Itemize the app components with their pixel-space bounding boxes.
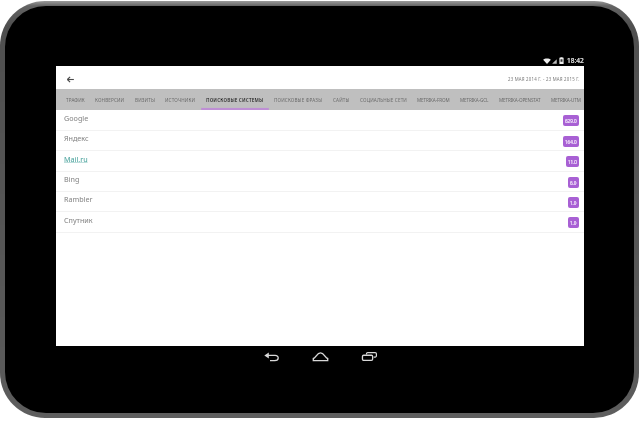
staticText: 18:42 bbox=[567, 56, 584, 65]
staticText: Bing bbox=[64, 174, 80, 184]
button[interactable]: METRIKA-GCL bbox=[455, 89, 494, 110]
button[interactable]: Back bbox=[247, 346, 296, 366]
staticText: 1.0 bbox=[570, 200, 577, 206]
staticText: ИСТОЧНИКИ bbox=[165, 97, 196, 103]
button[interactable]: Google bbox=[56, 110, 584, 131]
button[interactable]: ТРАФИК bbox=[61, 89, 90, 110]
staticText: ВИЗИТЫ bbox=[135, 97, 155, 103]
button[interactable]: ПОИСКОВЫЕ СИСТЕМЫ bbox=[201, 89, 269, 110]
button[interactable]: Яндекс bbox=[56, 131, 584, 151]
staticText: 23 МАЯ 2014 Г. - 23 МАЯ 2015 Г. bbox=[508, 76, 580, 82]
button[interactable]: Bing bbox=[56, 172, 584, 192]
staticText: 1.0 bbox=[570, 220, 577, 226]
button[interactable]: Rambler bbox=[56, 192, 584, 212]
staticText: METRIKA-GCL bbox=[460, 97, 489, 103]
button[interactable]: Recents bbox=[345, 346, 394, 366]
button[interactable]: ПОИСКОВЫЕ ФРАЗЫ bbox=[269, 89, 328, 110]
staticText: ПОИСКОВЫЕ ФРАЗЫ bbox=[274, 97, 323, 103]
staticText: ТРАФИК bbox=[66, 97, 85, 103]
button[interactable]: METRIKA-OPENSTAT bbox=[494, 89, 546, 110]
button[interactable]: METRIKA-FROM bbox=[412, 89, 455, 110]
staticText: Mail.ru bbox=[64, 154, 88, 164]
staticText: 629.0 bbox=[565, 118, 577, 124]
staticText: Спутник bbox=[64, 215, 93, 225]
staticText: METRIKA-FROM bbox=[417, 97, 450, 103]
button[interactable]: Back bbox=[61, 69, 79, 89]
staticText: 164.0 bbox=[565, 139, 577, 145]
button[interactable]: СОЦИАЛЬНЫЕ СЕТИ bbox=[355, 89, 412, 110]
button[interactable]: Спутник bbox=[56, 212, 584, 233]
button[interactable]: САЙТЫ bbox=[328, 89, 355, 110]
button[interactable]: ИСТОЧНИКИ bbox=[160, 89, 201, 110]
button[interactable]: Home bbox=[296, 346, 345, 366]
button[interactable]: КОНВЕРСИИ bbox=[90, 89, 130, 110]
staticText: 11.0 bbox=[568, 159, 577, 165]
staticText: Rambler bbox=[64, 194, 93, 204]
staticText: Google bbox=[64, 113, 89, 123]
staticText: METRIKA-UTM bbox=[551, 97, 579, 103]
staticText: САЙТЫ bbox=[333, 97, 350, 103]
staticText: 6.0 bbox=[570, 180, 577, 186]
staticText: КОНВЕРСИИ bbox=[95, 97, 125, 103]
button[interactable]: Mail.ru bbox=[56, 151, 584, 172]
staticText: ПОИСКОВЫЕ СИСТЕМЫ bbox=[206, 97, 264, 103]
staticText: СОЦИАЛЬНЫЕ СЕТИ bbox=[360, 97, 407, 103]
staticText: Яндекс bbox=[64, 133, 89, 143]
staticText: METRIKA-OPENSTAT bbox=[499, 97, 541, 103]
button[interactable]: METRIKA-UTM bbox=[546, 89, 584, 110]
button[interactable]: ВИЗИТЫ bbox=[130, 89, 160, 110]
